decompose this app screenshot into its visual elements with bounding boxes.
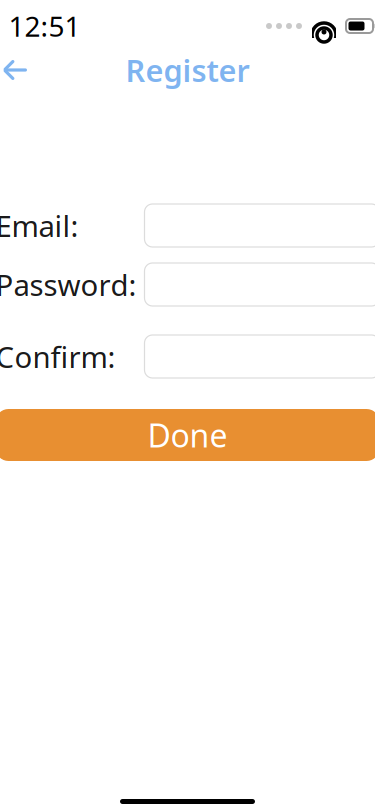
button[interactable]: Confirm: bbox=[144, 335, 375, 378]
staticText: Register bbox=[125, 50, 249, 90]
staticText: Confirm: bbox=[0, 337, 115, 376]
button[interactable]: Email: bbox=[144, 204, 375, 247]
staticText: Done bbox=[147, 414, 227, 456]
staticText: 12:51 bbox=[8, 7, 80, 45]
button[interactable]: Back bbox=[0, 48, 36, 92]
staticText: Password: bbox=[0, 265, 136, 304]
button[interactable]: Done bbox=[0, 409, 375, 461]
button[interactable]: Password: bbox=[144, 263, 375, 306]
staticText: Email: bbox=[0, 206, 78, 245]
